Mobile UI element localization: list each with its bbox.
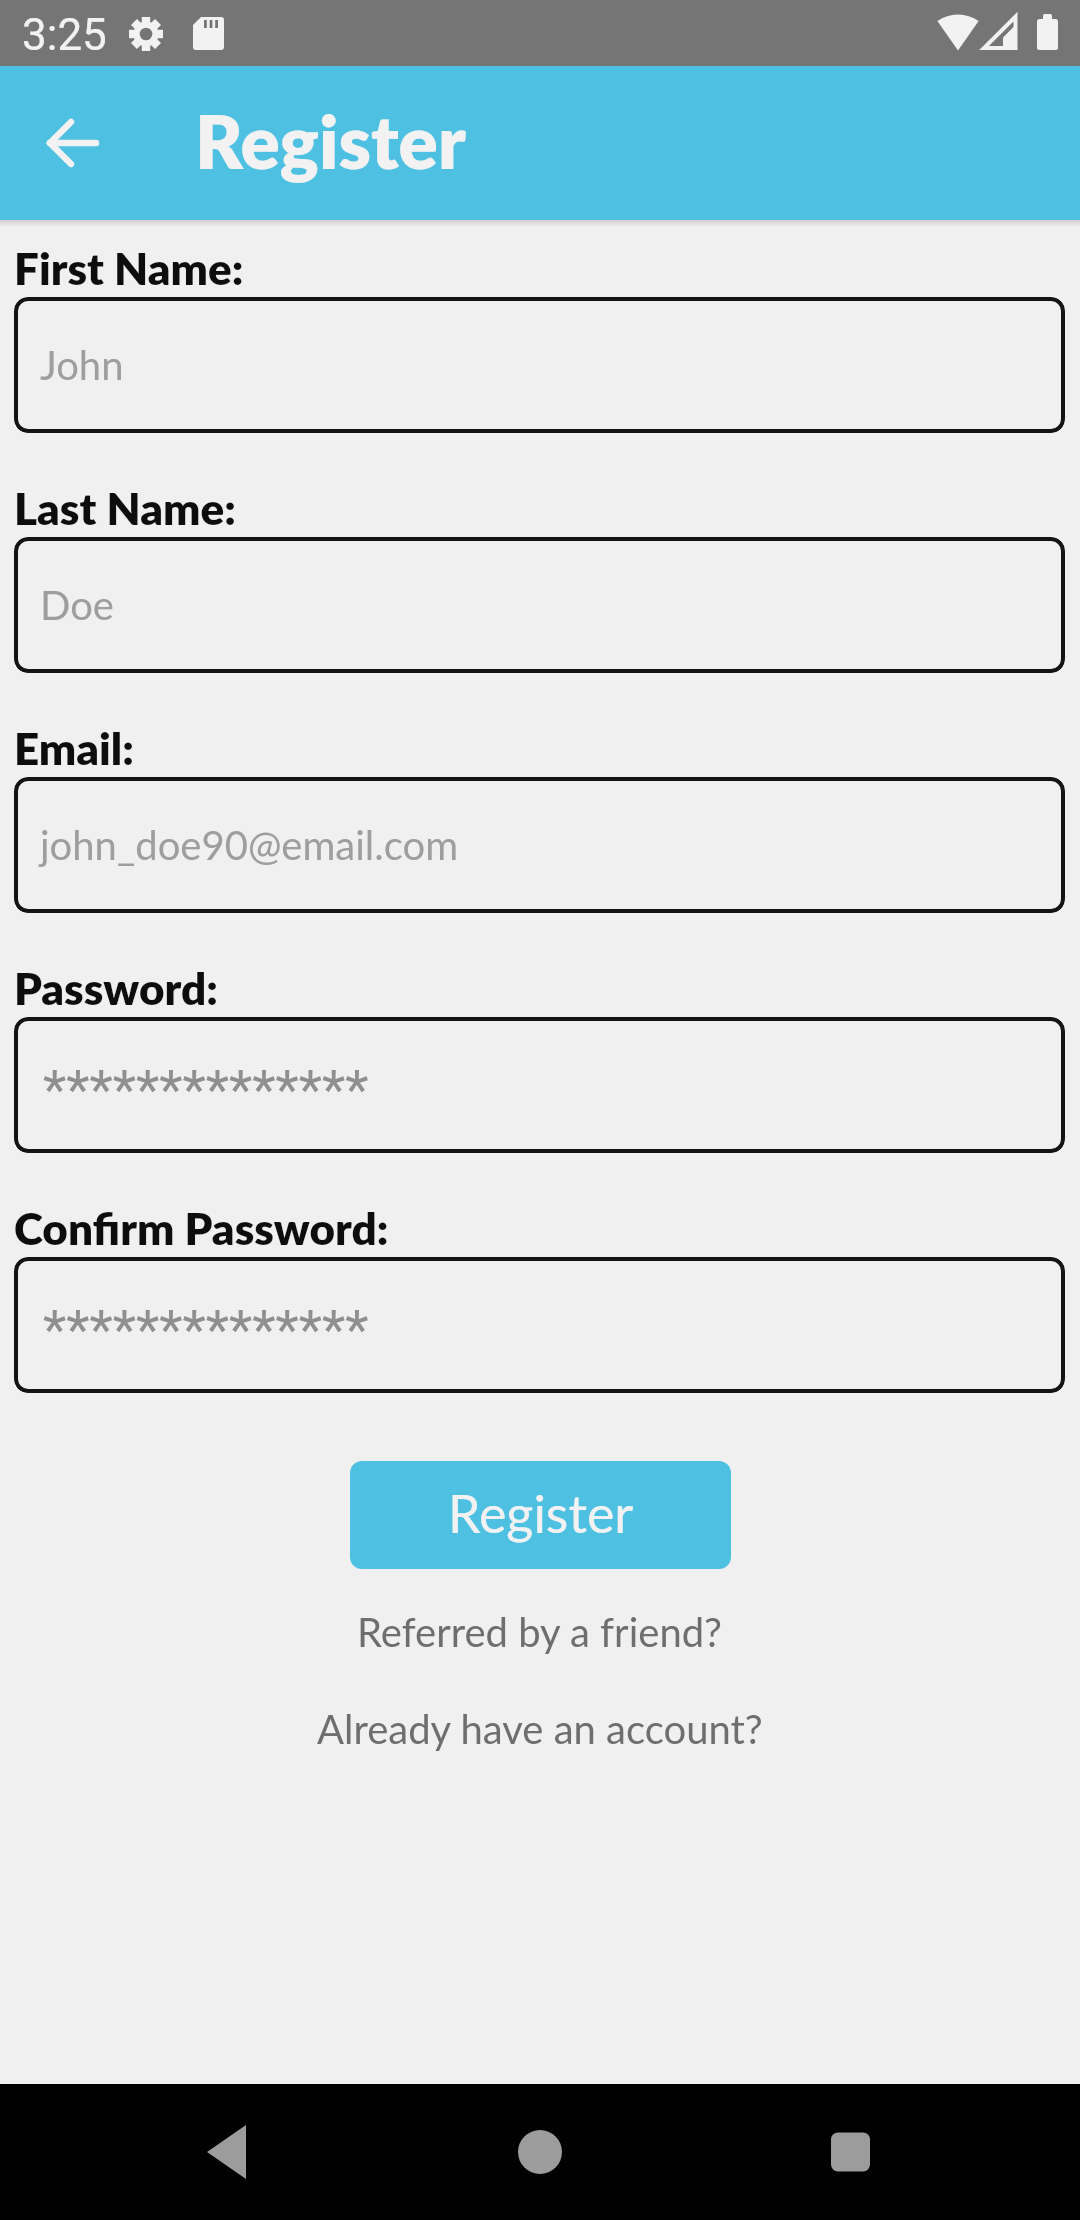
button[interactable]: ************** [14, 1017, 1065, 1153]
button[interactable]: Doe [14, 537, 1065, 673]
button[interactable]: ************** [14, 1257, 1065, 1393]
staticText: Last Name: [14, 482, 236, 535]
staticText: 3:25 [22, 9, 107, 61]
button[interactable] [180, 2107, 270, 2197]
button[interactable]: john_doe90@email.com [14, 777, 1065, 913]
staticText: Password: [14, 962, 218, 1015]
button[interactable]: Referred by a friend? [357, 1608, 723, 1656]
button[interactable]: John [14, 297, 1065, 433]
staticText: Confirm Password: [14, 1202, 389, 1255]
button[interactable] [830, 2107, 920, 2197]
staticText: ************** [43, 1298, 369, 1361]
button[interactable] [495, 2107, 585, 2197]
button[interactable]: Register [350, 1461, 731, 1569]
staticText: Doe [40, 581, 114, 629]
button[interactable] [27, 97, 119, 189]
staticText: ************** [43, 1058, 369, 1121]
staticText: Email: [14, 722, 134, 775]
button[interactable]: Already have an account? [317, 1705, 763, 1753]
staticText: Register [448, 1482, 634, 1544]
staticText: John [40, 341, 124, 389]
staticText: First Name: [14, 242, 244, 295]
staticText: john_doe90@email.com [40, 821, 459, 869]
staticText: Register [195, 97, 466, 185]
